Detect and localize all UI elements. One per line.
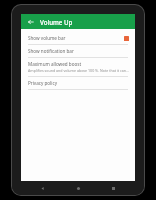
staticText: Volume Up	[40, 18, 73, 26]
button[interactable]: Home	[74, 184, 83, 193]
button[interactable]: Back	[38, 184, 47, 193]
button[interactable]: Maximum allowed boost	[21, 58, 135, 76]
button[interactable]: Recents	[109, 184, 118, 193]
button[interactable]: Privacy policy	[21, 77, 135, 89]
staticText: Maximum allowed boost	[28, 61, 82, 67]
staticText: Amplifies sound and volume above 100 %. …	[28, 68, 129, 73]
button[interactable]: Show volume bar	[21, 32, 135, 44]
button[interactable]: Back	[25, 16, 36, 27]
button[interactable]: Show notification bar	[21, 45, 135, 57]
staticText: Show notification bar	[28, 48, 74, 54]
staticText: Show volume bar	[28, 35, 66, 41]
button[interactable]: Show volume bar checkbox	[124, 36, 129, 41]
staticText: Privacy policy	[28, 80, 58, 86]
